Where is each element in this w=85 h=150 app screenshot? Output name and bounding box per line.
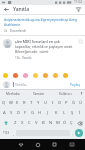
button[interactable]: P xyxy=(63,98,70,108)
staticText: P xyxy=(65,100,68,106)
button[interactable]: ?123 xyxy=(2,129,11,137)
button[interactable]: More xyxy=(78,39,82,43)
staticText: G xyxy=(31,110,35,116)
button[interactable]: R xyxy=(21,98,28,108)
button[interactable]: G xyxy=(29,108,36,118)
staticText: Kullanıcı xyxy=(59,92,72,96)
staticText: F xyxy=(24,110,27,116)
button[interactable]: Y xyxy=(35,98,42,108)
staticText: Yanıtla xyxy=(13,6,30,13)
staticText: U xyxy=(44,100,48,106)
button[interactable]: S xyxy=(8,108,15,118)
button[interactable]: Paylaş xyxy=(69,81,82,88)
button[interactable]: N xyxy=(47,118,54,128)
button[interactable]: X xyxy=(19,118,26,128)
button[interactable]: Ş xyxy=(68,108,76,118)
button[interactable]: E xyxy=(14,98,21,108)
button[interactable]: I xyxy=(49,98,56,108)
button[interactable]: Back xyxy=(12,139,29,150)
staticText: D xyxy=(17,110,21,116)
staticText: #viyanadaneolduguna #gereyeyinedisiyi #z… xyxy=(4,17,81,27)
button[interactable]: Emoji xyxy=(53,73,58,78)
button[interactable]: İ xyxy=(76,108,84,118)
button[interactable]: M xyxy=(54,118,61,128)
staticText: 11:02 xyxy=(74,0,83,4)
button[interactable]: K xyxy=(52,108,60,118)
button[interactable]: Emoji xyxy=(33,73,38,78)
staticText: 2s xyxy=(4,29,8,33)
staticText: E xyxy=(16,100,19,106)
staticText: X xyxy=(21,120,24,126)
staticText: ?123 xyxy=(3,131,10,135)
button[interactable]: Q xyxy=(1,98,7,108)
button[interactable]: Tamam xyxy=(26,90,52,97)
button[interactable]: Emoji xyxy=(63,73,68,78)
staticText: Ğ xyxy=(72,100,76,106)
staticText: M xyxy=(56,120,60,126)
button[interactable]: Back xyxy=(3,6,10,13)
button[interactable]: Period xyxy=(70,129,75,137)
staticText: R xyxy=(23,100,26,106)
staticText: Yanıtla xyxy=(22,56,32,60)
staticText: Yanıtla... xyxy=(15,82,29,87)
staticText: Merhaba xyxy=(6,92,20,96)
button[interactable]: Hide keyboard xyxy=(63,139,80,150)
staticText: B xyxy=(42,120,45,126)
button[interactable]: Options xyxy=(75,6,82,13)
button[interactable]: L xyxy=(60,108,68,118)
staticText: , xyxy=(13,131,15,136)
staticText: T xyxy=(30,100,33,106)
button[interactable]: Shift xyxy=(1,118,11,128)
button[interactable]: Emoji xyxy=(13,73,18,78)
button[interactable]: O xyxy=(56,98,63,108)
staticText: S xyxy=(10,110,13,116)
button[interactable]: Ö xyxy=(61,118,68,128)
staticText: Q xyxy=(2,100,6,106)
button[interactable]: Z xyxy=(11,118,19,128)
button[interactable]: W xyxy=(7,98,14,108)
button[interactable]: Ğ xyxy=(70,98,77,108)
button[interactable]: Merhaba xyxy=(0,90,26,97)
staticText: J xyxy=(47,110,49,116)
button[interactable]: F xyxy=(22,108,29,118)
button[interactable]: Comma xyxy=(11,129,16,137)
staticText: A xyxy=(3,110,6,116)
staticText: W xyxy=(9,100,13,106)
staticText: Paylaş xyxy=(70,82,81,87)
staticText: . xyxy=(72,131,74,136)
staticText: Ç xyxy=(70,120,73,126)
button[interactable]: Emoji xyxy=(43,73,48,78)
button[interactable]: Send xyxy=(75,129,83,137)
button[interactable]: C xyxy=(26,118,33,128)
staticText: Ş xyxy=(71,110,74,116)
staticText: kapanlılar, etkinlik ve paylaşım ortak xyxy=(15,44,73,49)
button[interactable]: Emoji xyxy=(3,73,8,78)
button[interactable]: D xyxy=(15,108,22,118)
button[interactable]: V xyxy=(33,118,40,128)
button[interactable]: Voice input xyxy=(78,90,85,97)
button[interactable]: Home xyxy=(29,139,46,150)
staticText: İ xyxy=(79,110,81,116)
staticText: K xyxy=(55,110,58,116)
button[interactable]: Recents xyxy=(46,139,63,150)
button[interactable]: Backspace xyxy=(75,118,84,128)
staticText: V xyxy=(35,120,38,126)
button[interactable]: Emoji xyxy=(23,73,28,78)
staticText: Tamam xyxy=(33,92,45,96)
button[interactable]: T xyxy=(28,98,35,108)
button[interactable]: Kullanıcı xyxy=(52,90,78,97)
button[interactable]: A xyxy=(1,108,8,118)
button[interactable]: Ü xyxy=(77,98,84,108)
button[interactable]: U xyxy=(42,98,49,108)
staticText: L xyxy=(63,110,66,116)
button[interactable]: Ç xyxy=(68,118,75,128)
button[interactable]: J xyxy=(44,108,52,118)
staticText: 10s xyxy=(15,56,20,60)
staticText: şlim MİRİ Sorunlarıl en çok xyxy=(15,39,60,44)
staticText: Ü xyxy=(79,100,83,106)
staticText: O xyxy=(58,100,62,106)
button[interactable]: H xyxy=(36,108,44,118)
button[interactable]: B xyxy=(40,118,47,128)
staticText: C xyxy=(28,120,31,126)
